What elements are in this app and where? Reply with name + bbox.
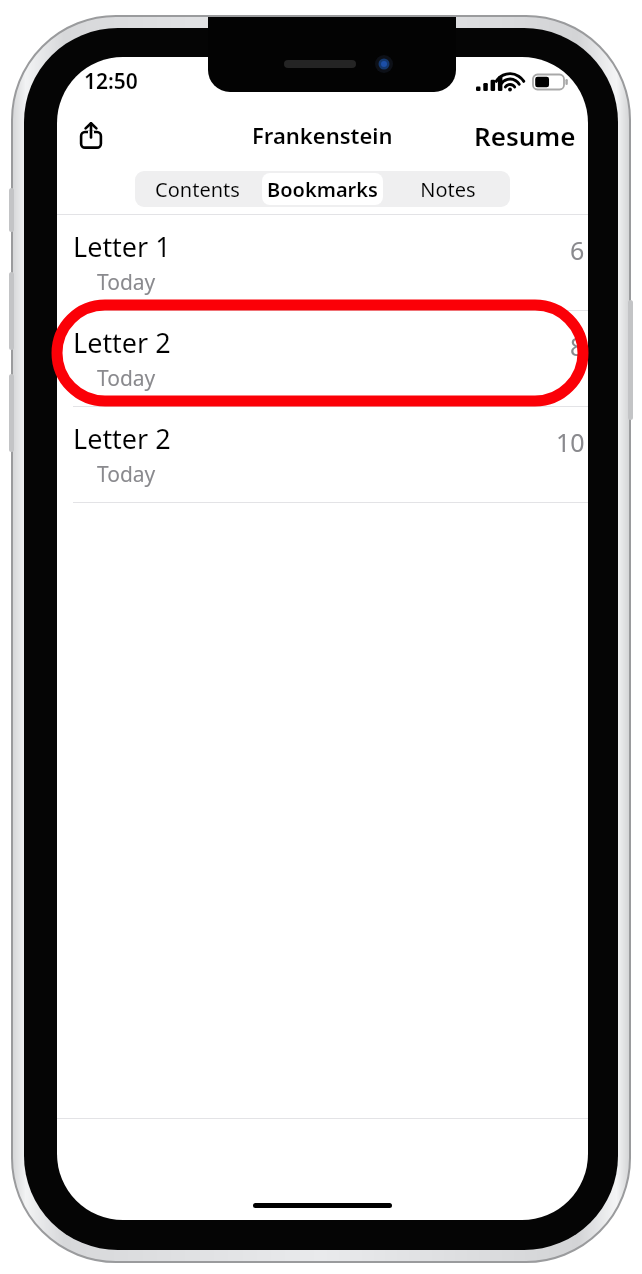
staticText: 12:50: [84, 67, 138, 96]
staticText: Today: [97, 364, 156, 393]
button[interactable]: Bookmarks: [262, 173, 383, 205]
button[interactable]: Contents: [137, 173, 258, 205]
button[interactable]: Notes: [387, 173, 508, 205]
staticText: Frankenstein: [252, 120, 393, 150]
staticText: Contents: [155, 176, 240, 203]
staticText: Letter 2: [73, 324, 171, 361]
staticText: 6: [570, 233, 585, 267]
button[interactable]: Letter 2: [57, 311, 588, 406]
staticText: 10: [556, 425, 585, 459]
staticText: Today: [97, 268, 156, 297]
staticText: Letter 1: [73, 228, 171, 265]
button[interactable]: Letter 1: [57, 215, 588, 310]
staticText: Bookmarks: [267, 176, 378, 203]
button[interactable]: Letter 2: [57, 407, 588, 502]
staticText: 8: [570, 329, 585, 363]
button[interactable]: Resume: [462, 112, 588, 159]
staticText: Resume: [474, 118, 576, 153]
button[interactable]: Share: [69, 113, 113, 157]
staticText: Letter 2: [73, 420, 171, 457]
staticText: Notes: [420, 176, 476, 203]
staticText: Today: [97, 460, 156, 489]
